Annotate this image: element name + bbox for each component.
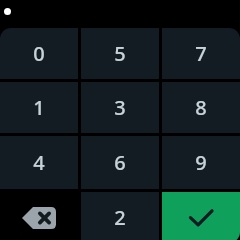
staticText: 2 bbox=[114, 204, 126, 231]
staticText: 4 bbox=[33, 149, 45, 176]
staticText: 6 bbox=[114, 149, 126, 176]
staticText: 0 bbox=[33, 40, 45, 67]
button[interactable]: 1 bbox=[0, 82, 78, 133]
staticText: 3 bbox=[114, 94, 126, 121]
button[interactable]: 8 bbox=[162, 82, 240, 133]
staticText: 1 bbox=[33, 94, 45, 121]
button[interactable]: 4 bbox=[0, 136, 78, 189]
button[interactable]: 2 bbox=[81, 192, 159, 240]
staticText: 5 bbox=[114, 40, 126, 67]
button[interactable]: 7 bbox=[162, 28, 240, 79]
staticText: 9 bbox=[195, 149, 207, 176]
button[interactable]: 9 bbox=[162, 136, 240, 189]
button[interactable]: 6 bbox=[81, 136, 159, 189]
button[interactable]: 0 bbox=[0, 28, 78, 79]
staticText: 7 bbox=[195, 40, 207, 67]
button[interactable]: Confirm bbox=[162, 192, 240, 240]
staticText: 8 bbox=[195, 94, 207, 121]
button[interactable]: Backspace bbox=[0, 192, 78, 240]
button[interactable]: 5 bbox=[81, 28, 159, 79]
button[interactable]: 3 bbox=[81, 82, 159, 133]
